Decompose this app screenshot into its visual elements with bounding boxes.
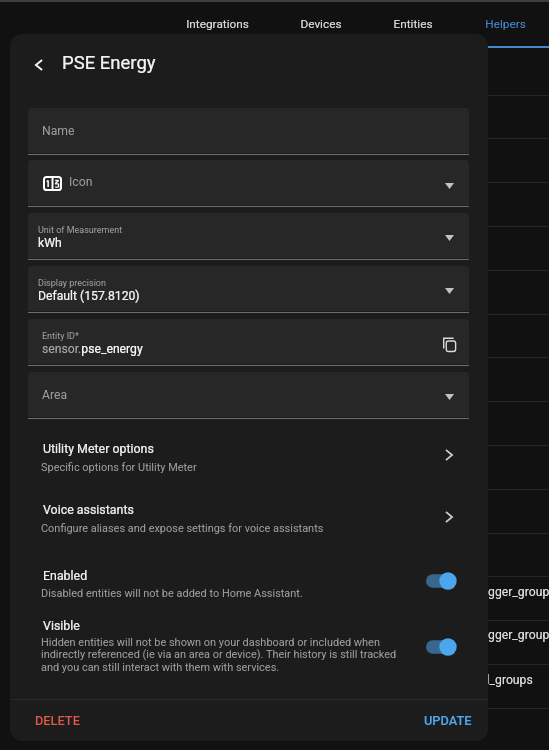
staticText: kWh [38,236,62,250]
button[interactable]: Devices [273,7,369,41]
staticText: Integrations [186,17,249,31]
staticText: and you can still interact with them wit… [41,661,280,674]
staticText: Disabled entities will not be added to H… [41,587,303,600]
staticText: DELETE [35,713,80,728]
staticText: UPDATE [424,713,472,728]
button[interactable]: Name [28,108,469,153]
button[interactable]: Enabled [10,556,488,607]
staticText: Voice assistants [43,502,134,517]
button[interactable]: DELETE [23,704,92,736]
button[interactable]: Utility Meter options [10,429,488,481]
staticText: Devices [300,17,342,31]
staticText: PSE Energy [62,52,156,74]
staticText: Name [42,124,75,138]
staticText: Entity ID* [42,331,79,342]
staticText: indirectly referenced (ie via an area or… [41,648,397,661]
button[interactable]: UPDATE [412,704,484,736]
staticText: sensor.pse_energy [42,342,143,356]
button[interactable]: Unit of Measurement [28,213,469,258]
button[interactable]: Area [28,372,469,417]
button[interactable]: Back [22,48,56,82]
staticText: Icon [69,175,93,189]
staticText: Helpers [485,17,526,31]
button[interactable]: Entities [365,7,461,41]
staticText: Entities [393,17,433,31]
staticText: Specific options for Utility Meter [41,461,197,474]
button[interactable]: Voice assistants [10,490,488,542]
staticText: Default (157.8120) [38,289,140,303]
staticText: trigger_group_2 [477,628,549,642]
button[interactable]: Entity ID* [28,319,469,364]
staticText: Utility Meter options [43,441,154,456]
staticText: Display precision [38,278,106,289]
button[interactable]: Helpers [457,7,549,41]
staticText: Visible [43,618,80,633]
staticText: Enabled [43,568,88,583]
staticText: Area [42,388,68,402]
staticText: Configure aliases and expose settings fo… [41,522,324,535]
staticText: Hidden entities will not be shown on you… [41,636,380,649]
button[interactable]: Visible [10,606,488,681]
button[interactable]: Icon [28,160,469,205]
button[interactable]: Display precision [28,266,469,311]
button[interactable]: Copy entity id [434,329,465,360]
staticText: Unit of Measurement [38,225,123,236]
staticText: all_groups [477,673,533,687]
button[interactable]: Integrations [169,7,265,41]
staticText: trigger_group_a [477,585,549,599]
